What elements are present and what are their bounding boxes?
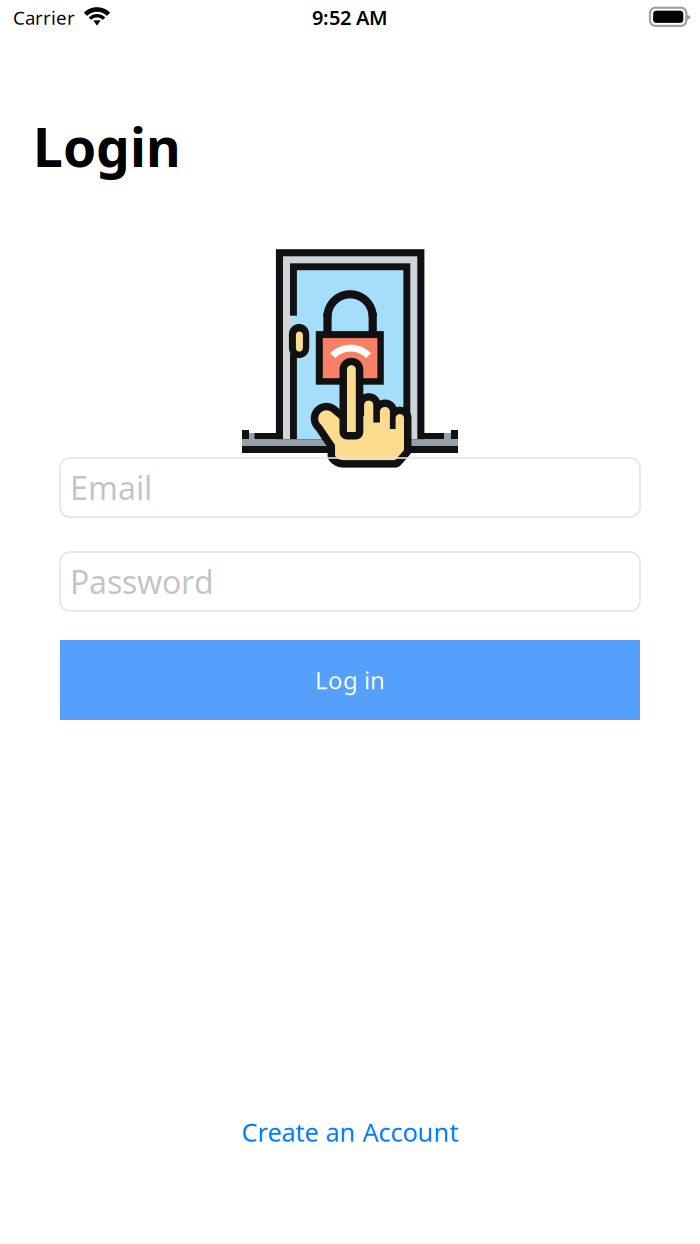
staticText: Password (70, 560, 214, 603)
staticText: Create an Account (241, 1115, 458, 1149)
button[interactable]: Log in (60, 640, 640, 720)
staticText: Log in (315, 664, 385, 696)
staticText: 9:52 AM (312, 4, 388, 31)
staticText: Carrier (13, 5, 75, 30)
staticText: Email (70, 466, 152, 509)
button[interactable]: Create an Account (210, 1110, 490, 1154)
staticText: Login (33, 111, 181, 182)
